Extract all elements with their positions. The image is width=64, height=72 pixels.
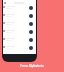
button[interactable] xyxy=(3,20,36,28)
button[interactable] xyxy=(3,28,36,36)
button[interactable] xyxy=(3,36,36,44)
staticText: From Alphabets xyxy=(20,64,44,68)
button[interactable] xyxy=(3,4,36,12)
button[interactable] xyxy=(3,12,36,20)
button[interactable] xyxy=(3,44,36,52)
